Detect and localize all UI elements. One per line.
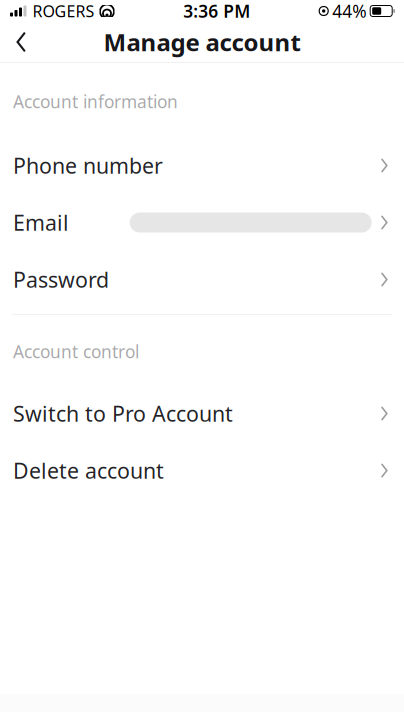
staticText: Phone number (13, 151, 163, 180)
button[interactable]: Delete account (0, 442, 404, 499)
staticText: Manage account (103, 26, 300, 58)
staticText: Account information (13, 90, 178, 113)
staticText: 3:36 PM (183, 0, 250, 22)
button[interactable]: Email (0, 194, 404, 251)
staticText: Email (13, 208, 69, 237)
staticText: 44% (332, 0, 366, 22)
staticText: Password (13, 265, 109, 294)
staticText: Delete account (13, 456, 164, 485)
button[interactable]: Back (0, 22, 42, 62)
button[interactable]: Phone number (0, 137, 404, 194)
button[interactable]: Switch to Pro Account (0, 385, 404, 442)
staticText: Switch to Pro Account (13, 399, 233, 428)
button[interactable]: Password (0, 251, 404, 308)
staticText: Account control (13, 340, 139, 363)
staticText: ROGERS (32, 0, 94, 22)
